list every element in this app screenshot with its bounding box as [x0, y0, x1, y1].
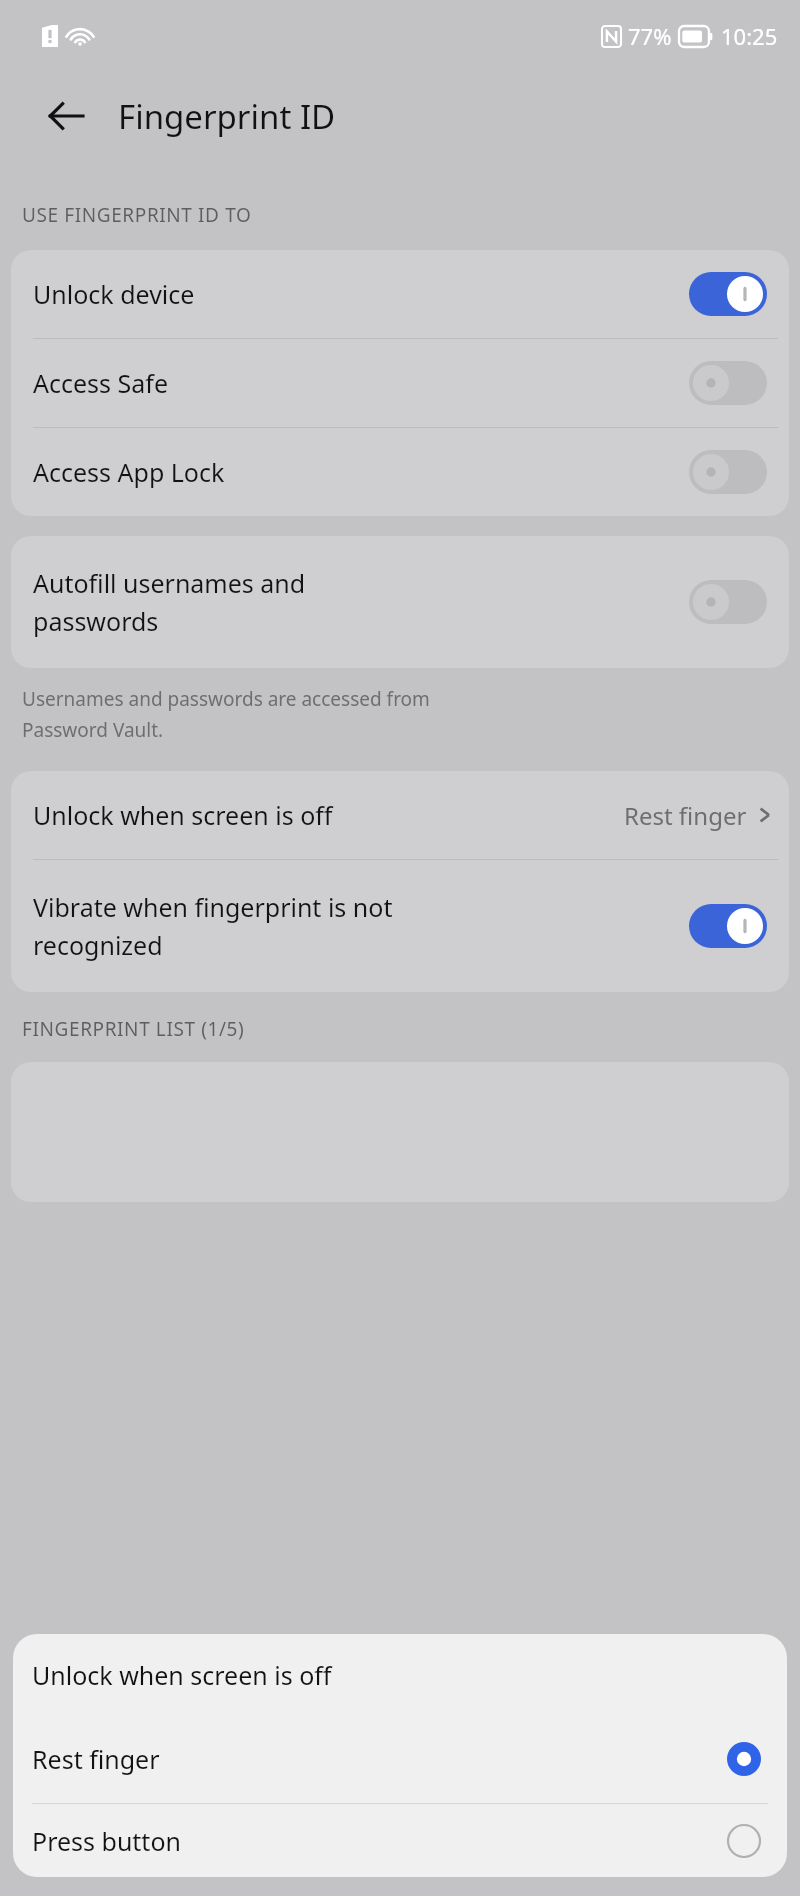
staticText: Unlock when screen is off: [32, 1658, 332, 1692]
staticText: Rest finger: [624, 799, 747, 832]
staticText: USE FINGERPRINT ID TO: [22, 202, 252, 228]
button[interactable]: Unlock when screen is off: [11, 771, 789, 859]
button[interactable]: Autofill usernames and: [11, 536, 789, 668]
staticText: Unlock when screen is off: [33, 798, 624, 832]
button[interactable]: Press button: [13, 1804, 787, 1877]
staticText: Access Safe: [33, 366, 689, 400]
button[interactable]: Off: [689, 361, 767, 405]
button[interactable]: Off: [689, 580, 767, 624]
staticText: Autofill usernames and: [33, 566, 306, 600]
button[interactable]: On: [689, 904, 767, 948]
button[interactable]: Access Safe: [11, 339, 789, 427]
staticText: Fingerprint ID: [118, 94, 336, 139]
staticText: 77%: [628, 21, 672, 51]
staticText: Vibrate when fingerprint is not: [33, 890, 393, 924]
staticText: FINGERPRINT LIST (1/5): [22, 1016, 245, 1042]
staticText: recognized: [33, 928, 163, 962]
button[interactable]: Off: [689, 450, 767, 494]
staticText: Usernames and passwords are accessed fro…: [22, 686, 430, 743]
button[interactable]: Vibrate when fingerprint is not: [11, 860, 789, 992]
staticText: Press button: [32, 1824, 727, 1858]
button[interactable]: Rest finger: [13, 1714, 787, 1803]
staticText: Unlock device: [33, 277, 689, 311]
button[interactable]: Access App Lock: [11, 428, 789, 516]
staticText: passwords: [33, 604, 159, 638]
button[interactable]: Unlock device: [11, 250, 789, 338]
button[interactable]: On: [689, 272, 767, 316]
staticText: 10:25: [721, 21, 778, 51]
staticText: Access App Lock: [33, 455, 689, 489]
button[interactable]: Back: [34, 84, 98, 148]
staticText: Rest finger: [32, 1742, 727, 1776]
